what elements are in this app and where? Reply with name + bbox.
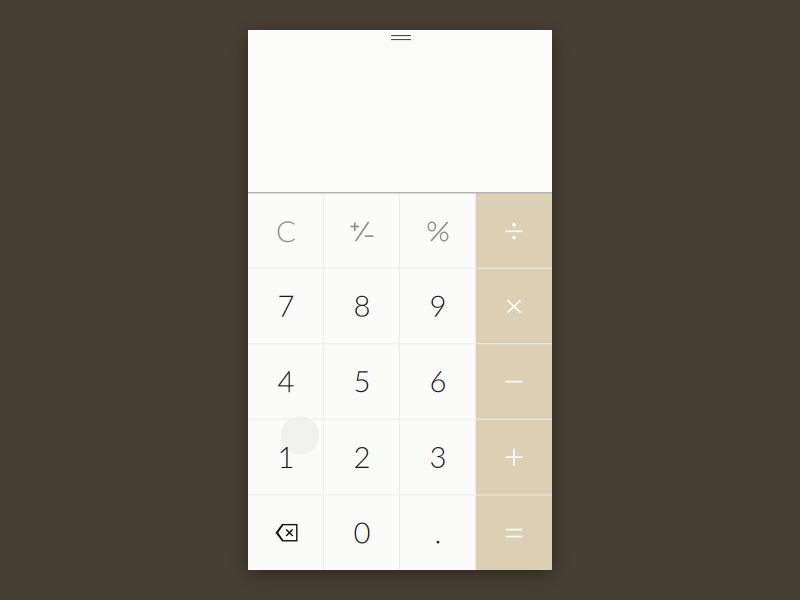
staticText: 2 — [353, 439, 370, 474]
button[interactable]: Equals — [476, 494, 552, 570]
staticText: 0 — [353, 515, 370, 550]
staticText: 7 — [277, 288, 294, 323]
button[interactable]: Clear — [248, 192, 324, 268]
button[interactable]: 3 — [400, 419, 476, 494]
staticText: 3 — [429, 439, 446, 474]
button[interactable]: 0 — [324, 494, 400, 570]
button[interactable]: Multiply — [476, 268, 552, 343]
button[interactable]: 1 — [248, 419, 324, 494]
button[interactable]: 6 — [400, 343, 476, 419]
staticText: 8 — [353, 288, 370, 323]
button[interactable]: Divide — [476, 192, 552, 268]
button[interactable]: Percent — [400, 192, 476, 268]
staticText: C — [276, 213, 296, 248]
staticText: 6 — [429, 363, 446, 399]
button[interactable]: . — [400, 494, 476, 570]
staticText: 5 — [353, 363, 370, 399]
staticText: 1 — [277, 439, 294, 474]
staticText: 9 — [429, 288, 446, 323]
button[interactable]: 8 — [324, 268, 400, 343]
staticText: 4 — [277, 363, 294, 399]
button[interactable]: Delete — [248, 494, 324, 570]
button[interactable]: 7 — [248, 268, 324, 343]
button[interactable]: 2 — [324, 419, 400, 494]
button[interactable]: 5 — [324, 343, 400, 419]
button[interactable]: Subtract — [476, 343, 552, 419]
button[interactable]: Plus minus — [324, 192, 400, 268]
button[interactable]: Add — [476, 419, 552, 494]
staticText: . — [434, 515, 441, 550]
button[interactable]: 9 — [400, 268, 476, 343]
button[interactable]: 4 — [248, 343, 324, 419]
